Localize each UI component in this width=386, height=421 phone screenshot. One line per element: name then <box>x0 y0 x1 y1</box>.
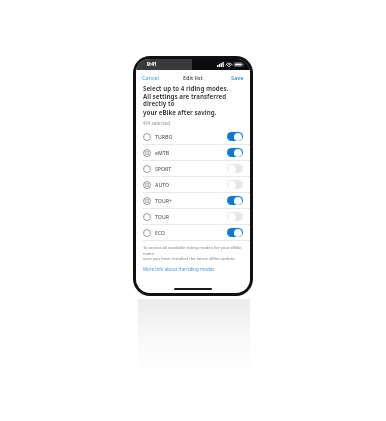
staticText: 4/4 selected <box>143 120 171 127</box>
button[interactable]: Enabled <box>227 132 243 141</box>
button[interactable]: TOUR <box>136 209 250 224</box>
button[interactable]: Enabled <box>227 196 243 205</box>
staticText: 9:41 <box>147 61 157 68</box>
button[interactable]: Disabled <box>227 164 243 173</box>
button[interactable]: Save <box>225 72 250 83</box>
staticText: Edit list <box>183 74 203 81</box>
staticText: TURBO <box>155 133 173 140</box>
staticText: ECO <box>155 229 166 236</box>
staticText: TOUR+ <box>155 197 172 204</box>
staticText: More info about the riding modes <box>143 266 215 272</box>
button[interactable]: Enabled <box>227 148 243 157</box>
staticText: Cancel <box>142 74 160 81</box>
button[interactable]: ECO <box>136 225 250 240</box>
button[interactable]: Disabled <box>227 212 243 221</box>
staticText: sure you have installed the latest eBike… <box>143 256 236 262</box>
button[interactable]: AUTO <box>136 177 250 192</box>
staticText: AUTO <box>155 181 170 188</box>
button[interactable]: eMTB <box>136 145 250 160</box>
button[interactable]: More info about the riding modes <box>143 266 215 272</box>
button[interactable]: SPORT <box>136 161 250 176</box>
staticText: SPORT <box>155 165 172 172</box>
button[interactable]: Cancel <box>136 72 166 83</box>
button[interactable]: Enabled <box>227 228 243 237</box>
staticText: Select up to 4 riding modes. <box>143 84 229 92</box>
staticText: your eBike after saving. <box>143 108 217 116</box>
button[interactable]: TOUR+ <box>136 193 250 208</box>
staticText: TOUR <box>155 213 169 220</box>
button[interactable]: TURBO <box>136 129 250 144</box>
button[interactable]: Disabled <box>227 180 243 189</box>
staticText: eMTB <box>155 149 170 156</box>
staticText: Save <box>231 74 244 81</box>
staticText: To access all available riding modes for… <box>143 245 243 256</box>
staticText: All settings are transferred directly to <box>143 92 243 108</box>
